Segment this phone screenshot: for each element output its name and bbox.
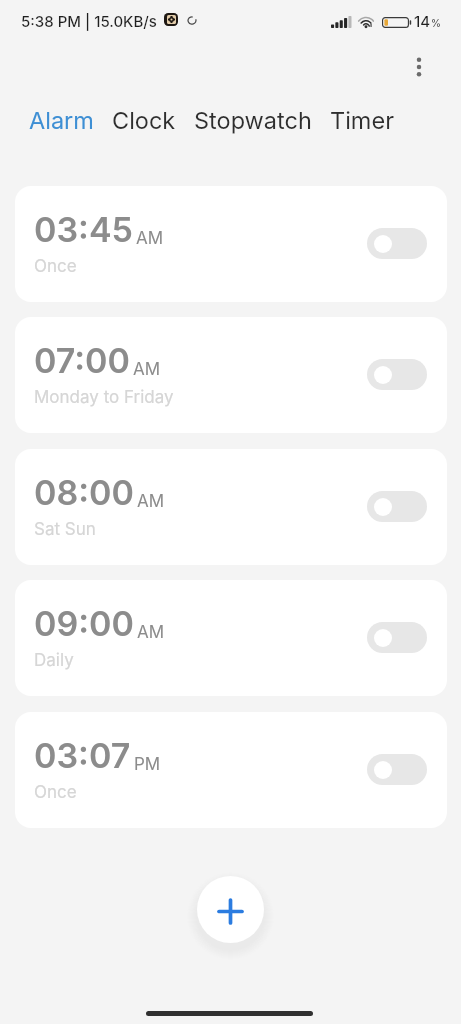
button[interactable]: Toggle alarm <box>367 754 427 785</box>
button[interactable]: Stopwatch <box>194 101 312 139</box>
button[interactable]: Timer <box>330 101 394 139</box>
button[interactable]: 03:07 <box>15 712 447 828</box>
button[interactable]: Toggle alarm <box>367 359 427 390</box>
staticText: Stopwatch <box>194 106 312 134</box>
staticText: PM <box>134 754 161 775</box>
button[interactable]: More options <box>398 46 440 88</box>
staticText: 03:07 <box>34 735 131 776</box>
staticText: AM <box>137 491 165 512</box>
button[interactable]: Toggle alarm <box>367 622 427 653</box>
button[interactable]: Toggle alarm <box>367 491 427 522</box>
staticText: Once <box>34 256 77 277</box>
staticText: Monday to Friday <box>34 387 174 408</box>
button[interactable]: Alarm <box>29 101 94 139</box>
staticText: 08:00 <box>34 472 134 513</box>
staticText: 07:00 <box>34 340 130 381</box>
staticText: Clock <box>112 106 176 134</box>
button[interactable]: Add alarm <box>197 876 264 943</box>
staticText: 14 <box>414 12 431 30</box>
button[interactable]: 07:00 <box>15 317 447 433</box>
button[interactable]: 08:00 <box>15 449 447 565</box>
staticText: 03:45 <box>34 209 133 250</box>
button[interactable]: Clock <box>112 101 176 139</box>
button[interactable]: 03:45 <box>15 186 447 302</box>
staticText: Once <box>34 782 77 803</box>
button[interactable]: Toggle alarm <box>367 228 427 259</box>
staticText: Alarm <box>29 106 94 134</box>
staticText: 09:00 <box>34 603 134 644</box>
staticText: AM <box>133 359 161 380</box>
staticText: % <box>431 17 441 29</box>
staticText: 5:38 PM | 15.0KB/s <box>21 12 157 30</box>
staticText: Daily <box>34 650 74 671</box>
staticText: Timer <box>330 106 394 134</box>
button[interactable]: 09:00 <box>15 580 447 696</box>
staticText: AM <box>136 228 164 249</box>
staticText: AM <box>137 622 165 643</box>
staticText: Sat Sun <box>34 519 96 540</box>
